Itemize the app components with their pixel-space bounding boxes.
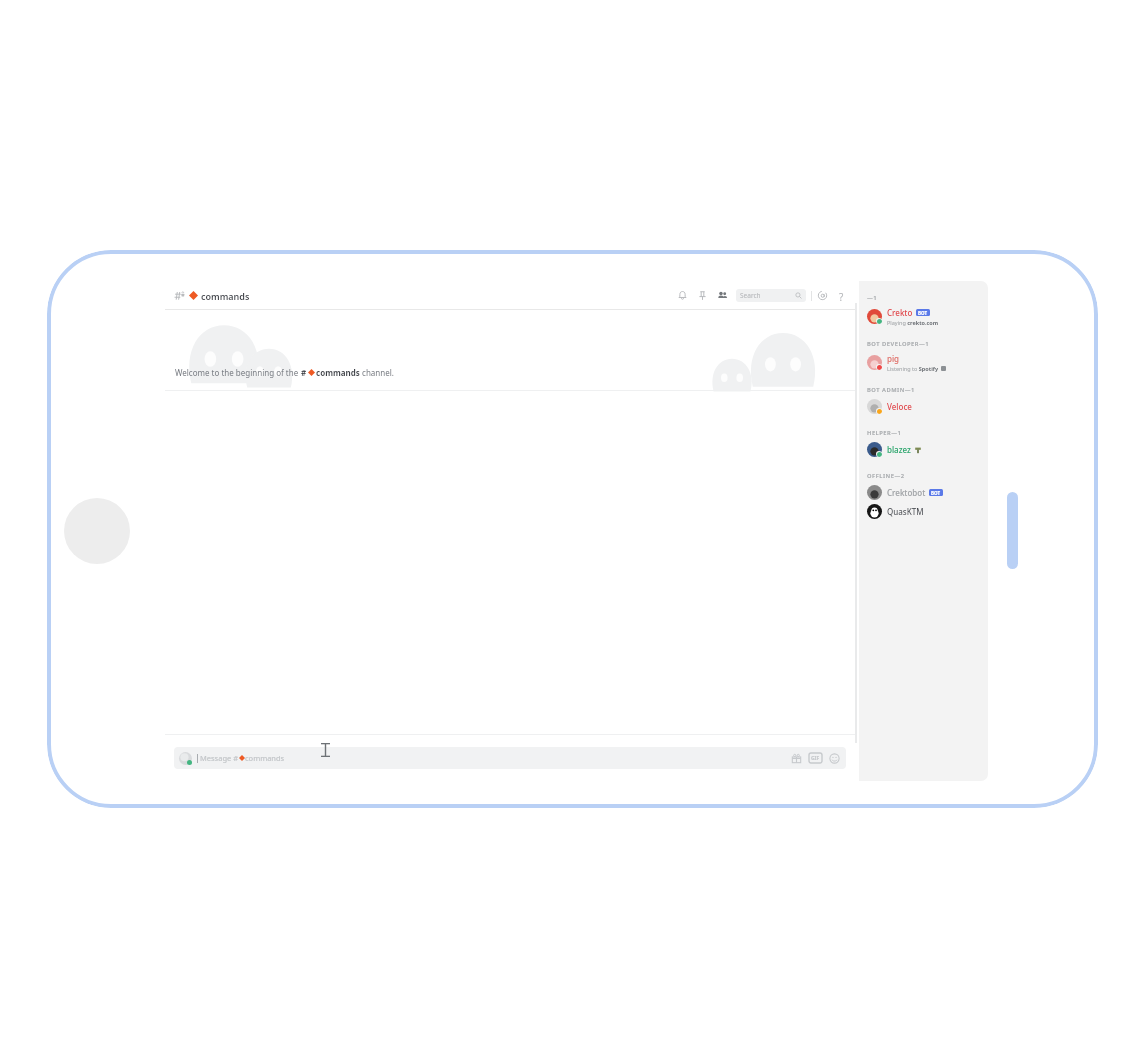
button[interactable]: Search [736,289,806,302]
button[interactable]: Home [64,498,130,564]
staticText: GIF [811,755,820,762]
button[interactable]: QuasKTM [867,502,982,521]
staticText: Veloce [887,401,912,412]
staticText: Listening to Spotify [887,365,939,372]
button[interactable]: Veloce [867,397,982,416]
staticText: BOT DEVELOPER—1 [867,340,930,348]
button[interactable]: Crekto [867,305,982,327]
button[interactable]: Help [836,290,847,301]
staticText: HELPER—1 [867,429,902,437]
button[interactable]: Send a gift [791,753,802,764]
staticText: commands [316,367,360,378]
staticText: BOT [918,310,928,316]
staticText: channel. [360,367,394,378]
staticText: Crektobot [887,487,926,498]
staticText: BOT ADMIN—1 [867,386,915,394]
staticText: OFFLINE—2 [867,472,905,480]
staticText: ? [839,290,844,301]
button[interactable]: Crektobot [867,483,982,502]
staticText: commands [245,753,285,763]
staticText: commands [201,290,250,302]
staticText: Playing crekto.com [887,319,939,326]
staticText: # [301,367,307,378]
button[interactable]: Pinned messages [697,290,708,301]
button[interactable]: pig [867,351,982,373]
staticText: Crekto [887,307,913,318]
staticText: Welcome to the beginning of the [175,367,301,378]
button[interactable]: blazez [867,440,982,459]
button[interactable]: Message # [174,747,846,769]
staticText: blazez [887,444,911,455]
staticText: Search [740,291,761,300]
button[interactable]: Open GIF picker [809,753,822,763]
staticText: Message # [200,753,239,763]
button[interactable]: Mentions [817,290,828,301]
staticText: —1 [867,294,878,302]
staticText: QuasKTM [887,506,924,517]
staticText: pig [887,353,900,364]
button[interactable]: Notifications [677,290,688,301]
staticText: BOT [931,490,941,496]
button[interactable]: Open emoji picker [829,753,840,764]
button[interactable]: Members [717,290,728,301]
